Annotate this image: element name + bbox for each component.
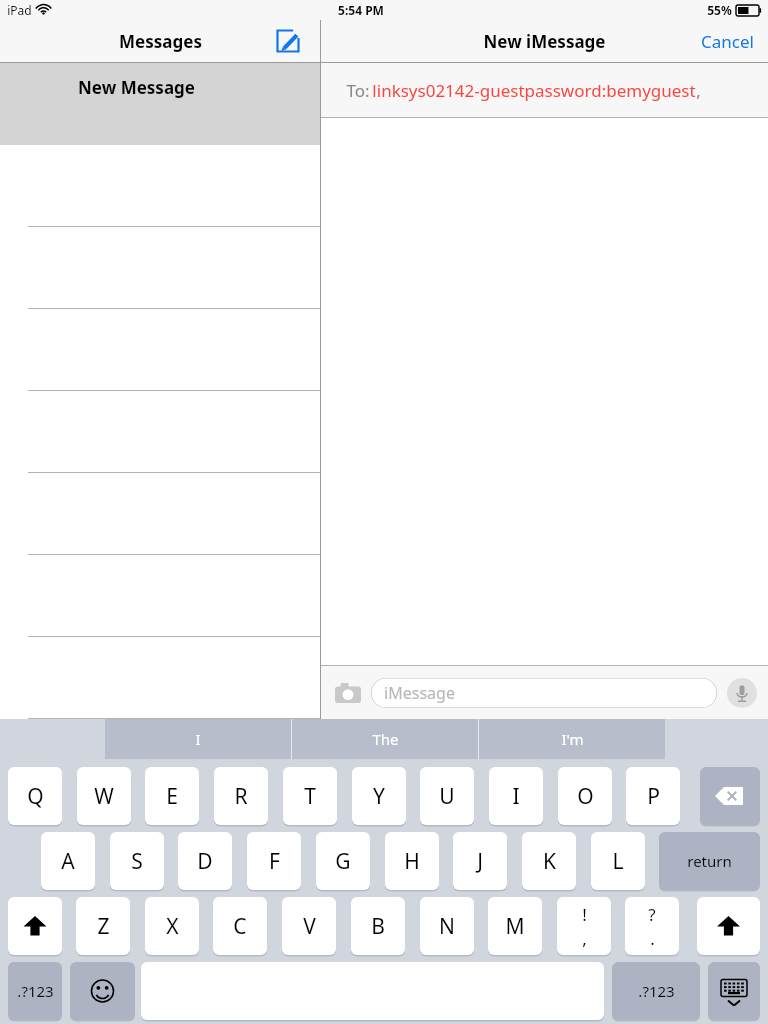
button[interactable]: Take photo or video [331,676,365,710]
button[interactable]: iMessage [371,678,717,708]
button[interactable]: C [213,897,267,955]
staticText: C [233,912,247,941]
button[interactable]: V [282,897,336,955]
button[interactable]: U [420,767,474,825]
staticText: V [303,912,316,941]
button[interactable]: The [292,719,478,759]
button[interactable]: .?123 [612,962,700,1020]
button[interactable]: M [488,897,542,955]
button[interactable]: I [489,767,543,825]
staticText: To: [344,79,372,102]
button[interactable]: ? [625,897,679,955]
button[interactable]: J [453,832,507,890]
staticText: S [131,847,143,876]
staticText: iPad [7,2,32,18]
staticText: W [94,782,114,811]
staticText: 55% [707,2,732,18]
button[interactable] [0,227,320,309]
staticText: . [650,927,655,950]
staticText: P [647,782,660,811]
staticText: O [577,782,594,811]
staticText: 5:54 PM [338,2,384,18]
button[interactable] [0,391,320,473]
staticText: linksys02142-guestpassword:bemyguest [372,79,696,102]
staticText: B [371,912,385,941]
button[interactable]: Hide keyboard [708,962,760,1020]
staticText: G [335,847,351,876]
staticText: The [372,729,399,749]
staticText: I [512,782,520,811]
button[interactable] [0,473,320,555]
button[interactable]: Shift [697,897,760,955]
staticText: J [477,847,483,876]
button[interactable]: A [41,832,95,890]
button[interactable]: Cancel [701,30,754,53]
staticText: F [269,847,280,876]
button[interactable]: Y [352,767,406,825]
staticText: L [612,847,624,876]
staticText: Cancel [701,30,754,53]
staticText: X [166,912,179,941]
button[interactable]: G [316,832,370,890]
staticText: .?123 [17,981,54,1001]
staticText: H [404,847,420,876]
button[interactable]: D [178,832,232,890]
staticText: Y [373,782,385,811]
staticText: Q [27,782,44,811]
staticText: E [166,782,178,811]
staticText: R [234,782,248,811]
button[interactable]: Shift [8,897,62,955]
button[interactable]: W [77,767,131,825]
button[interactable]: N [420,897,474,955]
staticText: iMessage [384,682,455,704]
button[interactable]: E [145,767,199,825]
staticText: I'm [561,729,584,749]
staticText: U [439,782,455,811]
button[interactable]: New Message [0,63,320,145]
button[interactable] [0,637,320,719]
button[interactable]: Backspace [700,767,760,825]
staticText: Z [97,912,110,941]
button[interactable]: return [659,832,760,890]
staticText: T [304,782,316,811]
staticText: I [195,729,201,749]
staticText: A [61,847,75,876]
staticText: D [197,847,213,876]
button[interactable]: Record audio message [726,677,758,709]
button[interactable]: L [591,832,645,890]
button[interactable]: Emoji keyboard [70,962,135,1020]
button[interactable]: S [110,832,164,890]
button[interactable]: I [105,719,291,759]
button[interactable]: P [626,767,680,825]
staticText: , [696,79,701,102]
button[interactable]: I'm [479,719,665,759]
button[interactable]: F [247,832,301,890]
button[interactable]: K [522,832,576,890]
staticText: Messages [119,30,202,53]
button[interactable]: H [385,832,439,890]
staticText: M [505,912,525,941]
button[interactable]: Z [76,897,130,955]
button[interactable]: Q [8,767,62,825]
button[interactable]: R [214,767,268,825]
staticText: ? [648,903,656,926]
button[interactable] [0,555,320,637]
button[interactable] [0,145,320,227]
staticText: ! [582,903,587,926]
button[interactable]: O [558,767,612,825]
button[interactable]: ! [557,897,611,955]
button[interactable]: B [351,897,405,955]
button[interactable]: Compose new message [270,23,306,59]
button[interactable]: X [145,897,199,955]
staticText: return [687,851,732,871]
staticText: New Message [78,76,195,99]
button[interactable]: To: [321,63,768,117]
staticText: N [439,912,455,941]
button[interactable] [0,309,320,391]
staticText: , [582,927,587,950]
staticText: New iMessage [483,30,606,53]
button[interactable]: .?123 [8,962,62,1020]
staticText: K [543,847,556,876]
button[interactable]: T [283,767,337,825]
